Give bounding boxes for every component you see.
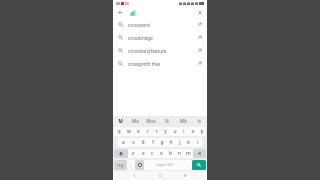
staticText: b	[198, 118, 201, 124]
button[interactable]: App logo	[128, 8, 137, 17]
staticText: p	[200, 128, 204, 135]
button[interactable]: o	[188, 127, 197, 136]
button[interactable]: h	[166, 138, 175, 147]
staticText: crossprofit free	[128, 61, 161, 67]
staticText: x	[142, 150, 145, 157]
button[interactable]: Search	[192, 160, 206, 170]
button[interactable]: k	[184, 138, 193, 147]
button[interactable]: Recents	[182, 172, 189, 179]
staticText: d	[141, 139, 145, 146]
staticText: k	[187, 139, 190, 146]
staticText: w	[127, 128, 131, 135]
button[interactable]: Back	[116, 8, 125, 17]
staticText: s	[132, 139, 135, 146]
button[interactable]: crossword	[113, 18, 207, 31]
button[interactable]: M	[113, 116, 128, 126]
button[interactable]: d	[138, 138, 148, 147]
staticText: j	[179, 139, 181, 146]
staticText: crossbridge	[128, 35, 153, 41]
staticText: a	[122, 139, 125, 146]
button[interactable]: v	[157, 149, 166, 158]
staticText: t	[156, 128, 158, 135]
staticText: e	[137, 128, 140, 135]
button[interactable]: e	[134, 127, 143, 136]
staticText: Mo	[132, 118, 139, 124]
button[interactable]: q	[114, 127, 124, 136]
button[interactable]: Clear search	[195, 8, 204, 17]
staticText: Mb	[180, 118, 187, 124]
button[interactable]: Emoji	[135, 160, 144, 170]
button[interactable]: Back	[131, 172, 138, 179]
staticText: r	[146, 128, 149, 135]
button[interactable]: t	[152, 127, 161, 136]
button[interactable]: b	[166, 149, 175, 158]
button[interactable]: z	[128, 149, 138, 158]
button[interactable]: n	[175, 149, 184, 158]
staticText: English (US)	[156, 163, 173, 167]
staticText: g	[160, 139, 164, 146]
button[interactable]: c	[148, 149, 157, 158]
staticText: n	[178, 150, 182, 157]
button[interactable]: Space	[144, 160, 185, 170]
button[interactable]: a	[118, 138, 128, 147]
staticText: crossword	[128, 22, 150, 28]
button[interactable]: Home	[157, 172, 164, 179]
button[interactable]: r	[143, 127, 152, 136]
staticText: o	[191, 128, 195, 135]
button[interactable]: crossprofit free	[113, 57, 207, 70]
staticText: i	[183, 128, 185, 135]
staticText: q	[117, 128, 121, 135]
button[interactable]: p	[197, 127, 206, 136]
button[interactable]: w	[124, 127, 134, 136]
button[interactable]: Mo	[128, 116, 143, 126]
staticText: m	[186, 150, 191, 157]
staticText: y	[164, 128, 167, 135]
button[interactable]: g	[157, 138, 166, 147]
button[interactable]: b	[191, 116, 207, 126]
staticText: h	[169, 139, 173, 146]
button[interactable]: Backspace	[193, 149, 206, 158]
button[interactable]: Shift	[114, 149, 128, 158]
button[interactable]: N	[159, 116, 175, 126]
button[interactable]: s	[128, 138, 138, 147]
staticText: v	[160, 150, 163, 157]
button[interactable]: crossword feature	[113, 44, 207, 57]
staticText: b	[169, 150, 173, 157]
button[interactable]: i	[179, 127, 188, 136]
staticText: f	[152, 139, 154, 146]
staticText: l	[197, 139, 199, 146]
staticText: u	[173, 128, 177, 135]
button[interactable]: f	[148, 138, 157, 147]
button[interactable]: m	[184, 149, 193, 158]
button[interactable]: l	[193, 138, 202, 147]
button[interactable]: x	[138, 149, 148, 158]
button[interactable]: crossbridge	[113, 31, 207, 44]
staticText: crossword feature	[128, 48, 167, 54]
staticText: ,	[130, 162, 132, 169]
staticText: Moo	[146, 118, 156, 124]
staticText: c	[151, 150, 154, 157]
button[interactable]: y	[161, 127, 170, 136]
button[interactable]: u	[170, 127, 179, 136]
button[interactable]: ,	[127, 160, 135, 170]
button[interactable]: Mb	[175, 116, 191, 126]
button[interactable]: j	[175, 138, 184, 147]
staticText: ?1@	[117, 163, 124, 168]
button[interactable]: Symbols	[114, 160, 127, 170]
button[interactable]: .	[185, 160, 192, 170]
staticText: M	[118, 118, 123, 124]
staticText: N	[165, 118, 169, 124]
button[interactable]: Moo	[143, 116, 159, 126]
staticText: .	[188, 162, 190, 169]
staticText: z	[132, 150, 135, 157]
